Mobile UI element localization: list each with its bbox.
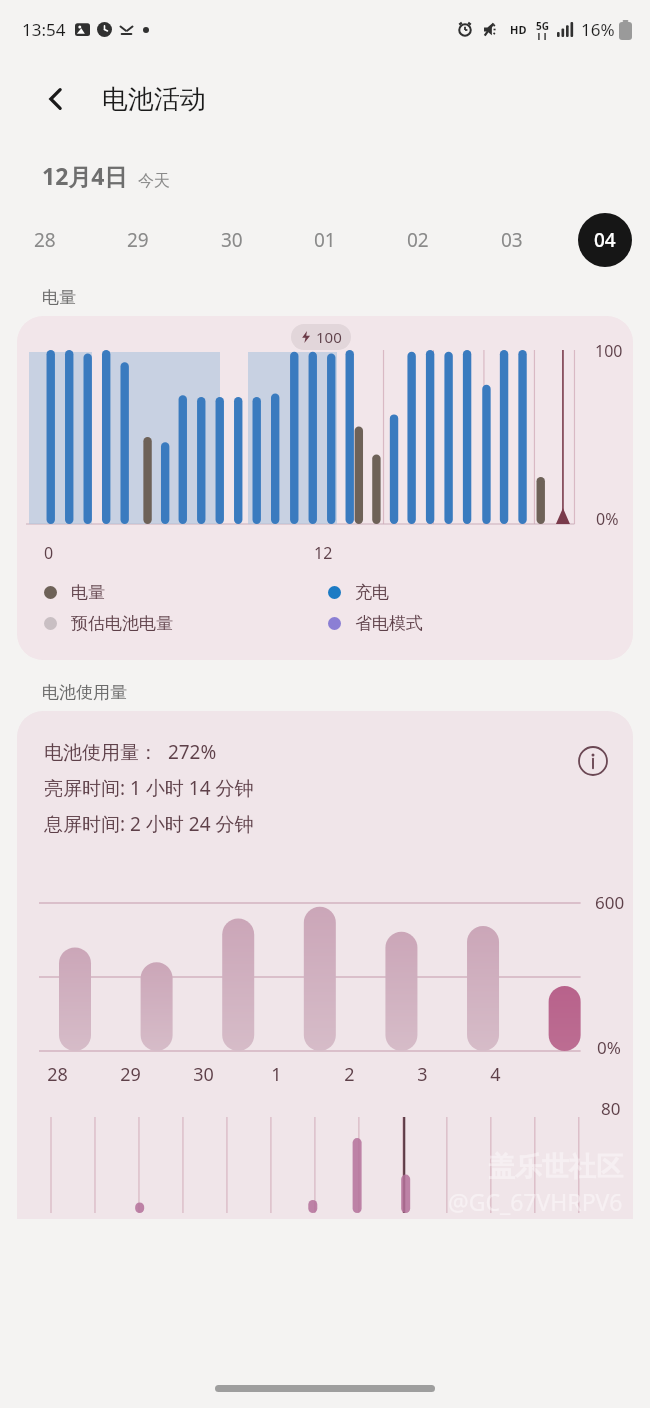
staticText: 12月4日: [42, 160, 128, 191]
staticText: 3: [417, 1062, 428, 1087]
staticText: @GC_67VHRPV6: [448, 1186, 623, 1217]
staticText: 13:54: [22, 18, 66, 41]
button[interactable]: 返回: [34, 77, 78, 121]
staticText: 电池活动: [102, 83, 206, 116]
staticText: 0%: [597, 1036, 621, 1059]
staticText: 0: [44, 542, 54, 564]
button[interactable]: 信息: [573, 741, 613, 781]
staticText: 600: [595, 891, 625, 914]
staticText: 16%: [581, 18, 615, 41]
staticText: 28: [34, 227, 56, 253]
staticText: 0%: [596, 508, 619, 530]
staticText: 电池使用量: [42, 682, 127, 703]
button[interactable]: 01: [298, 213, 352, 267]
staticText: 100: [595, 340, 623, 362]
staticText: 02: [407, 227, 429, 253]
staticText: 80: [601, 1097, 621, 1120]
staticText: 5G: [536, 19, 549, 33]
staticText: 今天: [138, 171, 170, 191]
staticText: 04: [594, 227, 616, 253]
staticText: 4: [490, 1062, 501, 1087]
staticText: 29: [127, 227, 149, 253]
staticText: 29: [120, 1062, 141, 1087]
staticText: 电量: [71, 582, 105, 603]
button[interactable]: 29: [111, 213, 165, 267]
staticText: 亮屏时间: 1 小时 14 分钟: [44, 775, 254, 801]
staticText: 盖乐世社区: [488, 1150, 623, 1184]
staticText: 30: [221, 227, 243, 253]
button[interactable]: 03: [485, 213, 539, 267]
button[interactable]: 28: [18, 213, 72, 267]
staticText: 28: [47, 1062, 68, 1087]
staticText: 息屏时间: 2 小时 24 分钟: [44, 811, 254, 837]
staticText: 03: [501, 227, 523, 253]
staticText: 01: [314, 227, 336, 253]
staticText: 预估电池电量: [71, 613, 173, 634]
staticText: 2: [344, 1062, 355, 1087]
staticText: 电池使用量： 272%: [44, 739, 217, 765]
button[interactable]: 02: [391, 213, 445, 267]
staticText: 1: [271, 1062, 282, 1087]
button[interactable]: 100: [17, 316, 633, 660]
button[interactable]: 30: [205, 213, 259, 267]
staticText: 充电: [355, 582, 389, 603]
staticText: 省电模式: [355, 613, 423, 634]
staticText: HD: [510, 22, 527, 37]
button[interactable]: 04: [578, 213, 632, 267]
staticText: 30: [193, 1062, 214, 1087]
staticText: 电量: [42, 287, 76, 308]
staticText: 12: [314, 542, 333, 564]
staticText: 100: [316, 327, 342, 347]
button[interactable]: 电池使用量： 272%: [17, 711, 633, 1219]
